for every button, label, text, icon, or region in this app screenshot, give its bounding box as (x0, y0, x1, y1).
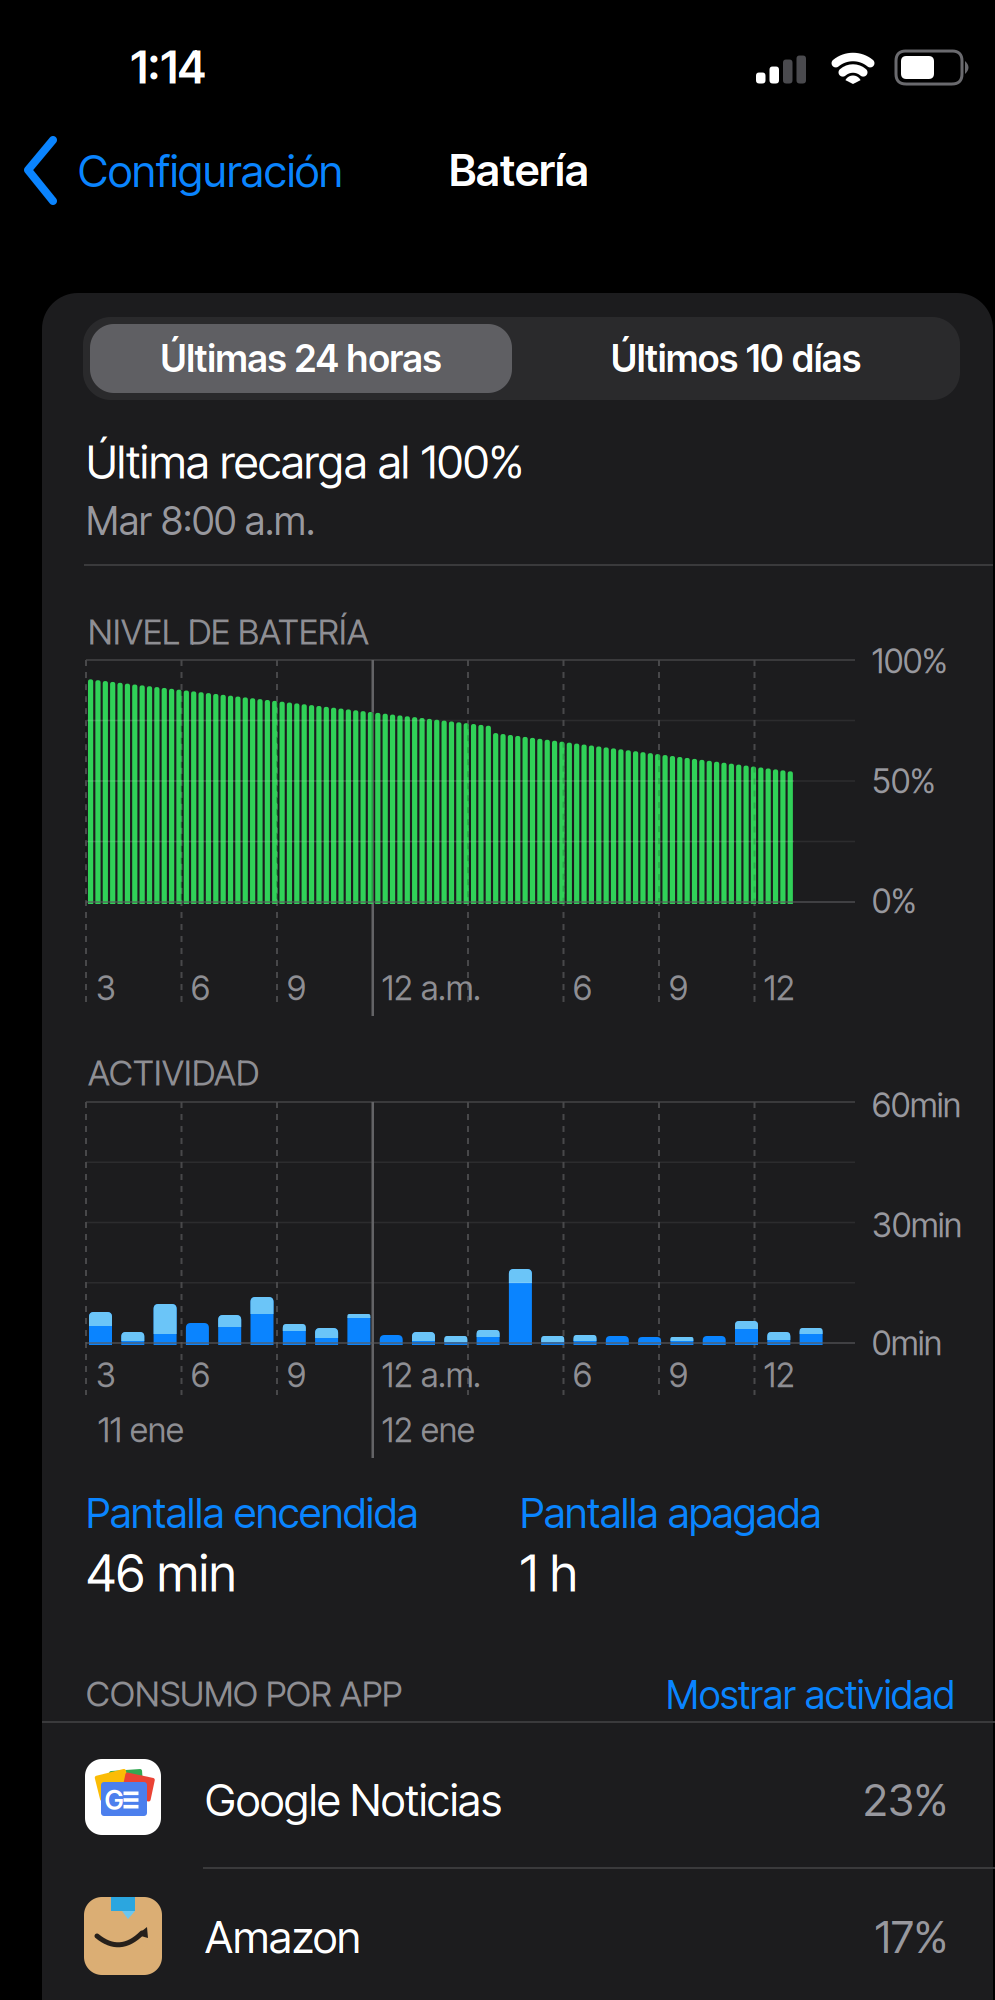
button[interactable]: Atrás a Configuración (15, 129, 485, 213)
staticText: 60min (872, 1085, 961, 1125)
staticText: 100% (872, 641, 948, 681)
staticText: 23% (863, 1774, 948, 1826)
staticText: 9 (287, 1355, 306, 1395)
staticText: 3 (96, 1355, 116, 1395)
staticText: ACTIVIDAD (88, 1053, 259, 1093)
staticText: 1:14 (130, 40, 205, 94)
staticText: 6 (573, 1355, 592, 1395)
staticText: 3 (96, 968, 116, 1008)
staticText: 50% (872, 761, 936, 801)
button[interactable]: Últimas 24 horas (90, 324, 512, 393)
staticText: Última recarga al 100% (86, 435, 524, 489)
staticText: 0% (872, 881, 917, 921)
button[interactable]: Últimos 10 días (521, 324, 951, 393)
staticText: 12 (764, 968, 795, 1008)
staticText: Amazon (205, 1911, 361, 1963)
staticText: CONSUMO POR APP (86, 1674, 402, 1714)
staticText: 6 (191, 1355, 210, 1395)
staticText: 17% (875, 1911, 948, 1963)
staticText: 9 (669, 968, 688, 1008)
staticText: Pantalla encendida (86, 1489, 418, 1537)
button[interactable]: Mostrar actividad (555, 1672, 955, 1718)
staticText: 11 ene (98, 1410, 184, 1450)
staticText: 0min (872, 1323, 942, 1363)
staticText: 6 (573, 968, 592, 1008)
staticText: 1 h (520, 1543, 578, 1603)
staticText: 46 min (86, 1543, 236, 1603)
staticText: 12 a.m. (382, 1355, 481, 1395)
staticText: Últimos 10 días (611, 336, 861, 380)
staticText: 30min (872, 1205, 962, 1245)
staticText: NIVEL DE BATERÍA (88, 612, 369, 652)
staticText: Pantalla apagada (520, 1489, 821, 1537)
staticText: 12 a.m. (382, 968, 481, 1008)
staticText: Mar 8:00 a.m. (86, 498, 315, 544)
staticText: 12 ene (382, 1410, 475, 1450)
staticText: 6 (191, 968, 210, 1008)
button[interactable]: Amazon (42, 1868, 995, 2000)
staticText: 12 (764, 1355, 795, 1395)
staticText: Configuración (78, 145, 343, 197)
button[interactable]: G (42, 1724, 995, 1868)
staticText: G (104, 1784, 123, 1816)
staticText: 9 (669, 1355, 688, 1395)
staticText: 9 (287, 968, 306, 1008)
staticText: Google Noticias (205, 1774, 502, 1826)
staticText: Últimas 24 horas (160, 336, 441, 380)
staticText: Mostrar actividad (666, 1672, 955, 1718)
staticText: Batería (449, 144, 589, 196)
